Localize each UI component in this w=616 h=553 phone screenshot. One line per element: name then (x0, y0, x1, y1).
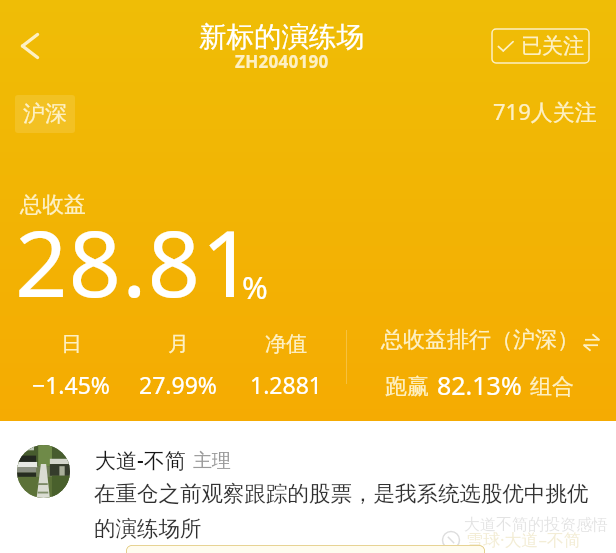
staticText: 月 (168, 331, 189, 357)
staticText: 已关注 (521, 33, 584, 59)
staticText: 跑赢 (385, 373, 429, 401)
staticText: 大道不简的投资感悟 (464, 515, 608, 535)
staticText: 新标的演练场 (199, 20, 364, 55)
staticText: 主理 (193, 449, 231, 473)
staticText: 雪球·大道–不简 (466, 528, 582, 551)
staticText: −1.45% (32, 369, 110, 400)
staticText: 净值 (265, 331, 307, 357)
button[interactable]: 日 (2, 331, 139, 400)
staticText: 28.81 (15, 199, 255, 324)
staticText: 719人关注 (493, 96, 597, 126)
button[interactable]: Back (8, 24, 52, 68)
button[interactable]: 已关注 (492, 29, 589, 63)
button[interactable]: 沪深 (15, 95, 75, 133)
staticText: 日 (61, 331, 82, 357)
staticText: 大道-不简 (95, 446, 186, 475)
staticText: 82.13% (437, 368, 522, 402)
staticText: 组合 (530, 373, 574, 401)
button[interactable]: Avatar (17, 445, 70, 498)
staticText: ZH2040190 (235, 50, 329, 73)
button[interactable]: 总收益排行（沪深） (368, 326, 612, 402)
staticText: 总收益 (20, 191, 86, 219)
staticText: 总收益排行（沪深） (381, 326, 579, 354)
staticText: % (242, 266, 268, 308)
button[interactable] (126, 545, 485, 553)
button[interactable]: 净值 (217, 331, 354, 400)
button[interactable]: 月 (109, 331, 246, 400)
staticText: 在重仓之前观察跟踪的股票，是我系统选股优中挑优的演练场所 (94, 480, 599, 543)
staticText: 1.2881 (250, 369, 322, 400)
staticText: 沪深 (23, 100, 67, 128)
staticText: 27.99% (139, 369, 217, 400)
